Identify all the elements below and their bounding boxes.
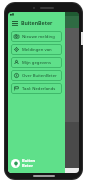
button[interactable]: Over BuitenBeter <box>11 70 62 81</box>
button[interactable]: Mijn gegevens <box>11 57 62 68</box>
staticText: Mijn gegevens <box>22 60 52 66</box>
staticText: BuitenBeter <box>21 19 53 26</box>
staticText: Nieuwe melding <box>22 34 55 40</box>
button[interactable]: Taal: Nederlands <box>11 83 62 94</box>
button[interactable]: Open menu <box>10 18 19 27</box>
staticText: Meldingen van anderen <box>22 47 60 53</box>
button[interactable]: Nieuwe melding <box>11 31 62 42</box>
staticText: Beter <box>22 163 33 168</box>
button[interactable]: Meldingen van anderen <box>11 44 62 55</box>
staticText: Taal: Nederlands <box>22 86 56 92</box>
staticText: Buiten <box>22 158 36 163</box>
staticText: Over BuitenBeter <box>22 73 57 79</box>
button[interactable]: Buiten <box>11 158 65 168</box>
